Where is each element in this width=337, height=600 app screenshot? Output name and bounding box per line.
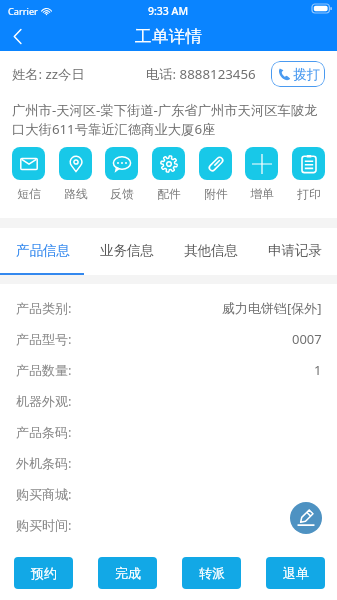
button[interactable]: 退单	[266, 557, 325, 589]
button[interactable]: Back	[0, 22, 34, 51]
button[interactable]: 产品类别:	[0, 292, 337, 323]
button[interactable]: 打印	[292, 147, 325, 202]
staticText: 姓名: zz今日	[12, 65, 85, 83]
staticText: 购买时间:	[16, 516, 72, 534]
staticText: 反馈	[110, 187, 134, 202]
staticText: 拨打	[293, 66, 320, 83]
staticText: 业务信息	[100, 242, 154, 259]
staticText: 路线	[64, 187, 88, 202]
staticText: 转派	[199, 565, 225, 581]
button[interactable]: 路线	[59, 147, 92, 202]
staticText: 机器外观:	[16, 392, 72, 410]
button[interactable]: 外机条码:	[0, 447, 337, 478]
button[interactable]: 业务信息	[85, 228, 169, 272]
staticText: 其他信息	[184, 242, 238, 259]
staticText: 产品信息	[16, 242, 70, 259]
button[interactable]: 短信	[12, 147, 45, 202]
staticText: 9:33 AM	[148, 4, 189, 18]
button[interactable]: 机器外观:	[0, 385, 337, 416]
staticText: 申请记录	[268, 242, 322, 259]
staticText: 附件	[204, 187, 228, 202]
button[interactable]: 产品信息	[0, 228, 85, 272]
staticText: 退单	[283, 565, 309, 581]
staticText: 配件	[157, 187, 181, 202]
staticText: 增单	[250, 187, 274, 202]
button[interactable]: 购买时间:	[0, 509, 337, 540]
button[interactable]: 拨打	[271, 61, 325, 87]
button[interactable]: 完成	[98, 557, 157, 589]
staticText: 购买商城:	[16, 485, 72, 503]
button[interactable]: 附件	[199, 147, 232, 202]
staticText: 预约	[31, 565, 57, 581]
button[interactable]: 配件	[152, 147, 185, 202]
staticText: 打印	[297, 187, 321, 202]
button[interactable]: Edit	[290, 502, 322, 534]
staticText: 广州市-天河区-棠下街道-广东省广州市天河区车陂龙口大街611号靠近汇德商业大厦…	[12, 101, 325, 138]
staticText: 产品条码:	[16, 423, 72, 441]
button[interactable]: 产品型号:	[0, 323, 337, 354]
staticText: 工单详情	[135, 26, 203, 47]
button[interactable]: 预约	[14, 557, 73, 589]
staticText: 产品型号:	[16, 330, 72, 348]
button[interactable]: 申请记录	[253, 228, 337, 272]
staticText: 完成	[115, 565, 141, 581]
staticText: Carrier	[8, 5, 38, 18]
staticText: 外机条码:	[16, 454, 72, 472]
staticText: 产品类别:	[16, 299, 72, 317]
staticText: 0007	[292, 330, 322, 348]
button[interactable]: 购买商城:	[0, 478, 337, 509]
staticText: 短信	[17, 187, 41, 202]
button[interactable]: 增单	[245, 147, 278, 202]
staticText: 电话: 8888123456	[146, 65, 256, 83]
button[interactable]: 反馈	[105, 147, 138, 202]
staticText: 威力电饼铛[保外]	[222, 299, 322, 317]
staticText: 产品数量:	[16, 361, 72, 379]
button[interactable]: 转派	[182, 557, 241, 589]
button[interactable]: 产品数量:	[0, 354, 337, 385]
staticText: 1	[314, 361, 322, 379]
button[interactable]: 产品条码:	[0, 416, 337, 447]
button[interactable]: 其他信息	[169, 228, 253, 272]
